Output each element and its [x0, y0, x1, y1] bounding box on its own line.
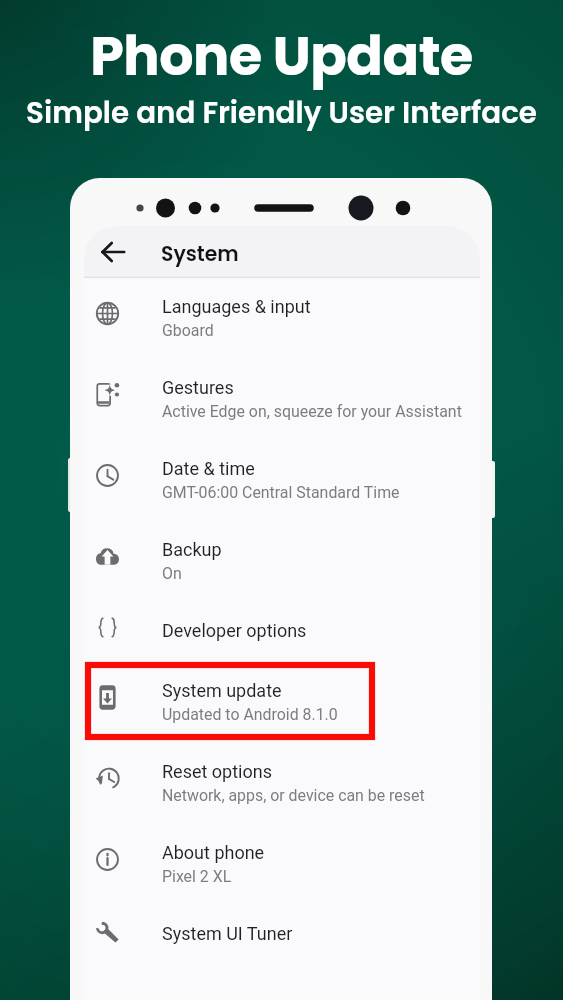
staticText: Simple and Friendly User Interface [0, 92, 563, 133]
button[interactable]: Languages & input [84, 276, 480, 357]
button[interactable]: Reset options [84, 741, 480, 822]
button[interactable]: Date & time [84, 438, 480, 519]
staticText: Developer options [162, 620, 307, 641]
staticText: System UI Tuner [162, 923, 293, 944]
staticText: About phone [162, 842, 265, 863]
staticText: Reset options [162, 761, 272, 782]
staticText: Pixel 2 XL [162, 867, 232, 886]
button[interactable]: System UI Tuner [84, 903, 480, 963]
button[interactable]: Developer options [84, 600, 480, 660]
button[interactable]: About phone [84, 822, 480, 903]
staticText: On [162, 564, 182, 583]
staticText: Updated to Android 8.1.0 [162, 705, 338, 724]
button[interactable]: Back [89, 228, 137, 276]
button[interactable]: Backup [84, 519, 480, 600]
staticText: Gestures [162, 377, 234, 398]
staticText: GMT-06:00 Central Standard Time [162, 483, 400, 502]
staticText: Gboard [162, 321, 214, 340]
staticText: Active Edge on, squeeze for your Assista… [162, 402, 462, 421]
button[interactable]: Gestures [84, 357, 480, 438]
staticText: Network, apps, or device can be reset [162, 786, 425, 805]
button[interactable]: System update [84, 660, 480, 741]
staticText: System update [162, 680, 282, 701]
staticText: Languages & input [162, 296, 311, 317]
staticText: Backup [162, 539, 222, 560]
staticText: Phone Update [0, 18, 563, 93]
staticText: Date & time [162, 458, 255, 479]
staticText: System [161, 240, 239, 269]
